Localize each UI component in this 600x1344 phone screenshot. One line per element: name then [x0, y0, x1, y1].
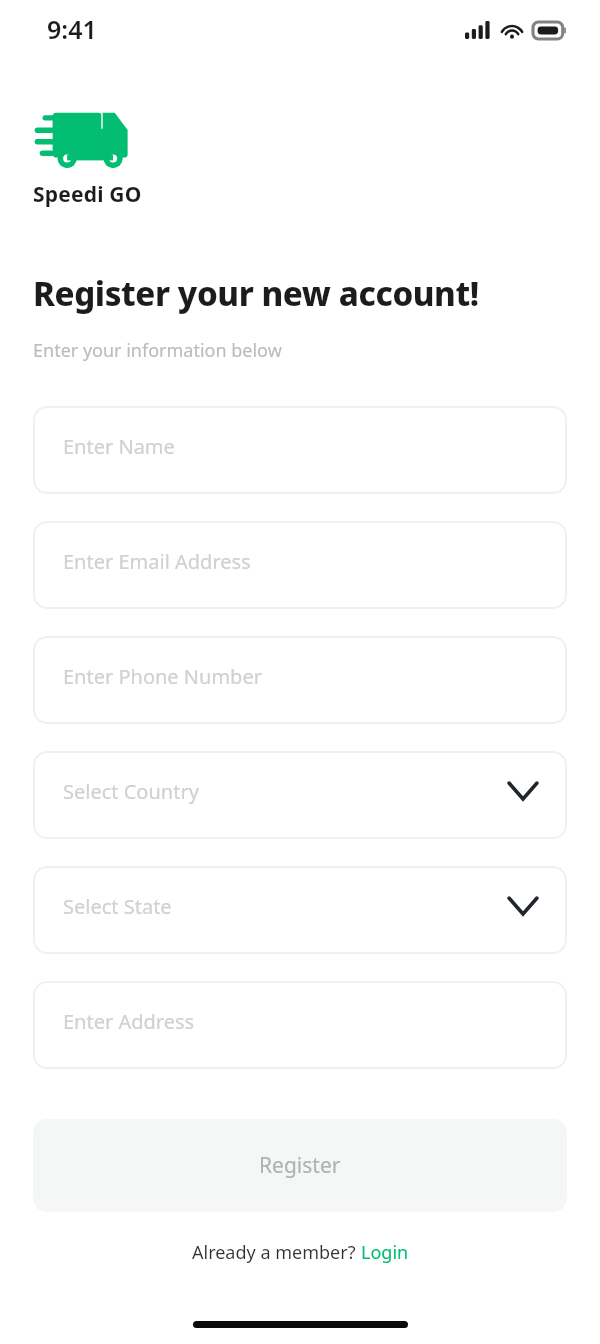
- staticText: Enter your information below: [33, 338, 282, 363]
- button[interactable]: Select Country: [33, 751, 567, 839]
- button[interactable]: Register: [33, 1119, 567, 1212]
- button[interactable]: Login: [361, 1240, 409, 1265]
- staticText: Already a member?: [192, 1240, 361, 1265]
- staticText: 9:41: [47, 12, 97, 46]
- staticText: Enter Phone Number: [63, 663, 262, 690]
- other: Open Select State dropdown: [507, 890, 539, 922]
- other: Open Select Country dropdown: [507, 775, 539, 807]
- staticText: Select State: [63, 893, 172, 920]
- staticText: Login: [361, 1240, 409, 1265]
- staticText: Speedi GO: [33, 180, 142, 209]
- staticText: Register your new account!: [33, 271, 479, 316]
- staticText: Enter Name: [63, 433, 175, 460]
- staticText: Enter Address: [63, 1008, 195, 1035]
- staticText: Enter Email Address: [63, 548, 251, 575]
- button[interactable]: Select State: [33, 866, 567, 954]
- staticText: Select Country: [63, 778, 199, 805]
- button[interactable]: Enter Phone Number: [33, 636, 567, 724]
- button[interactable]: Enter Address: [33, 981, 567, 1069]
- staticText: Register: [259, 1151, 341, 1180]
- button[interactable]: Enter Name: [33, 406, 567, 494]
- button[interactable]: Enter Email Address: [33, 521, 567, 609]
